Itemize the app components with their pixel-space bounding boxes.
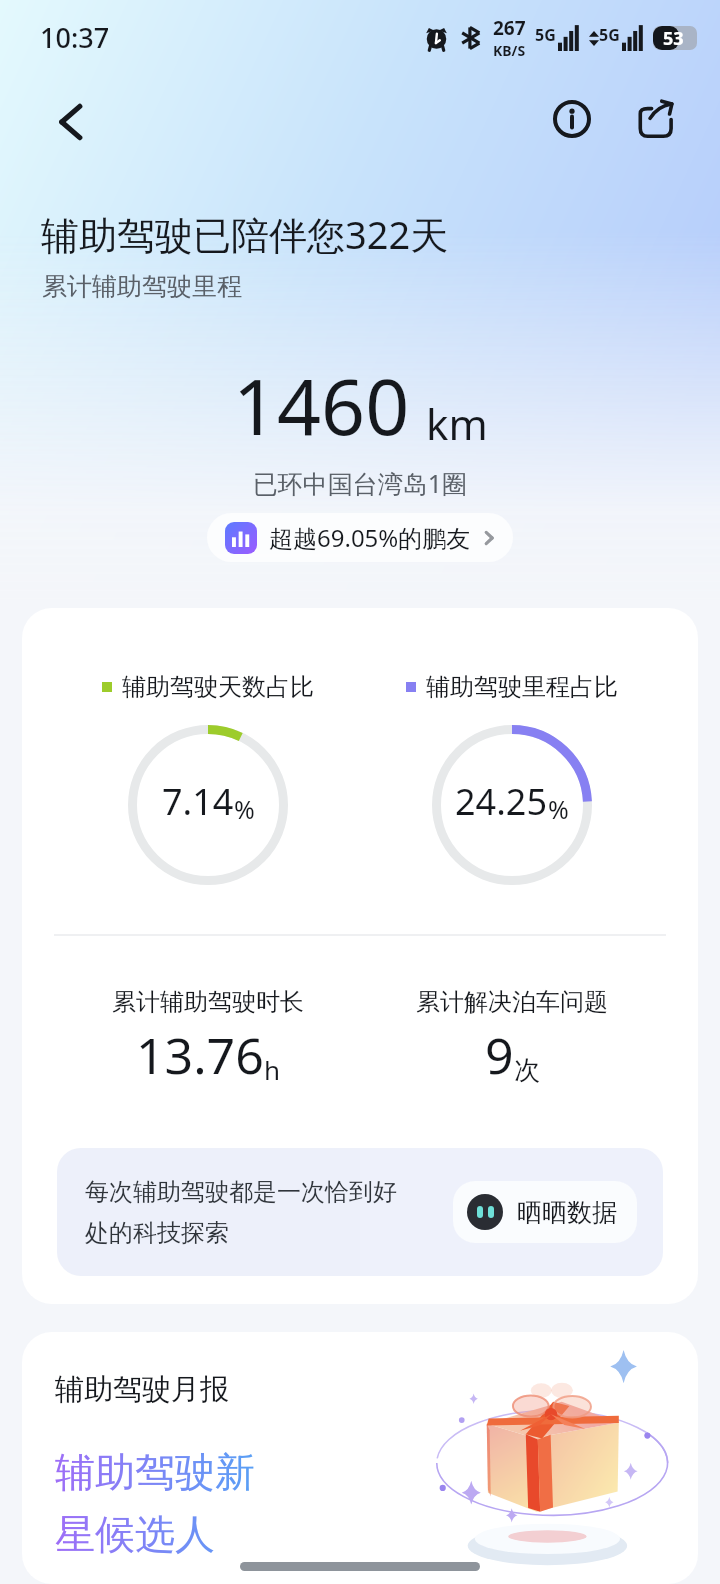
staticText: 9 xyxy=(485,1021,514,1089)
staticText: km xyxy=(426,395,488,452)
staticText: % xyxy=(234,792,255,826)
staticText: 7.14 xyxy=(162,777,234,826)
staticText: 辅助驾驶里程占比 xyxy=(426,672,618,702)
button[interactable]: 晒晒数据 xyxy=(453,1181,637,1243)
staticText: 累计辅助驾驶里程 xyxy=(42,271,242,302)
button[interactable]: 辅助驾驶月报 xyxy=(22,1332,698,1584)
staticText: 5G xyxy=(535,24,556,46)
staticText: 267 xyxy=(493,15,526,41)
staticText: 每次辅助驾驶都是一次恰到好 处的科技探索 xyxy=(85,1177,397,1248)
button[interactable]: Back xyxy=(36,84,106,154)
staticText: 辅助驾驶新 星候选人 xyxy=(55,1447,255,1560)
staticText: 5G xyxy=(599,24,620,46)
staticText: 辅助驾驶月报 xyxy=(55,1371,229,1408)
staticText: 10:37 xyxy=(40,19,110,56)
staticText: 1460 xyxy=(233,353,410,458)
staticText: 超越69.05%的鹏友 xyxy=(269,521,471,554)
staticText: h xyxy=(264,1052,281,1087)
staticText: 已环中国台湾岛1圈 xyxy=(0,466,720,500)
staticText: 53 xyxy=(663,26,684,50)
staticText: 24.25 xyxy=(455,777,548,826)
staticText: 次 xyxy=(514,1054,540,1087)
staticText: 累计辅助驾驶时长 xyxy=(112,987,304,1017)
staticText: 晒晒数据 xyxy=(517,1197,617,1228)
staticText: 13.76 xyxy=(136,1021,264,1089)
button[interactable]: 超越69.05%的鹏友 xyxy=(207,513,513,562)
staticText: KB/S xyxy=(493,41,526,60)
staticText: 辅助驾驶已陪伴您322天 xyxy=(41,208,449,260)
staticText: 辅助驾驶天数占比 xyxy=(122,672,314,702)
button[interactable]: Share xyxy=(622,86,688,152)
button[interactable]: Info xyxy=(539,86,605,152)
staticText: 累计解决泊车问题 xyxy=(416,987,608,1017)
staticText: % xyxy=(548,792,569,826)
